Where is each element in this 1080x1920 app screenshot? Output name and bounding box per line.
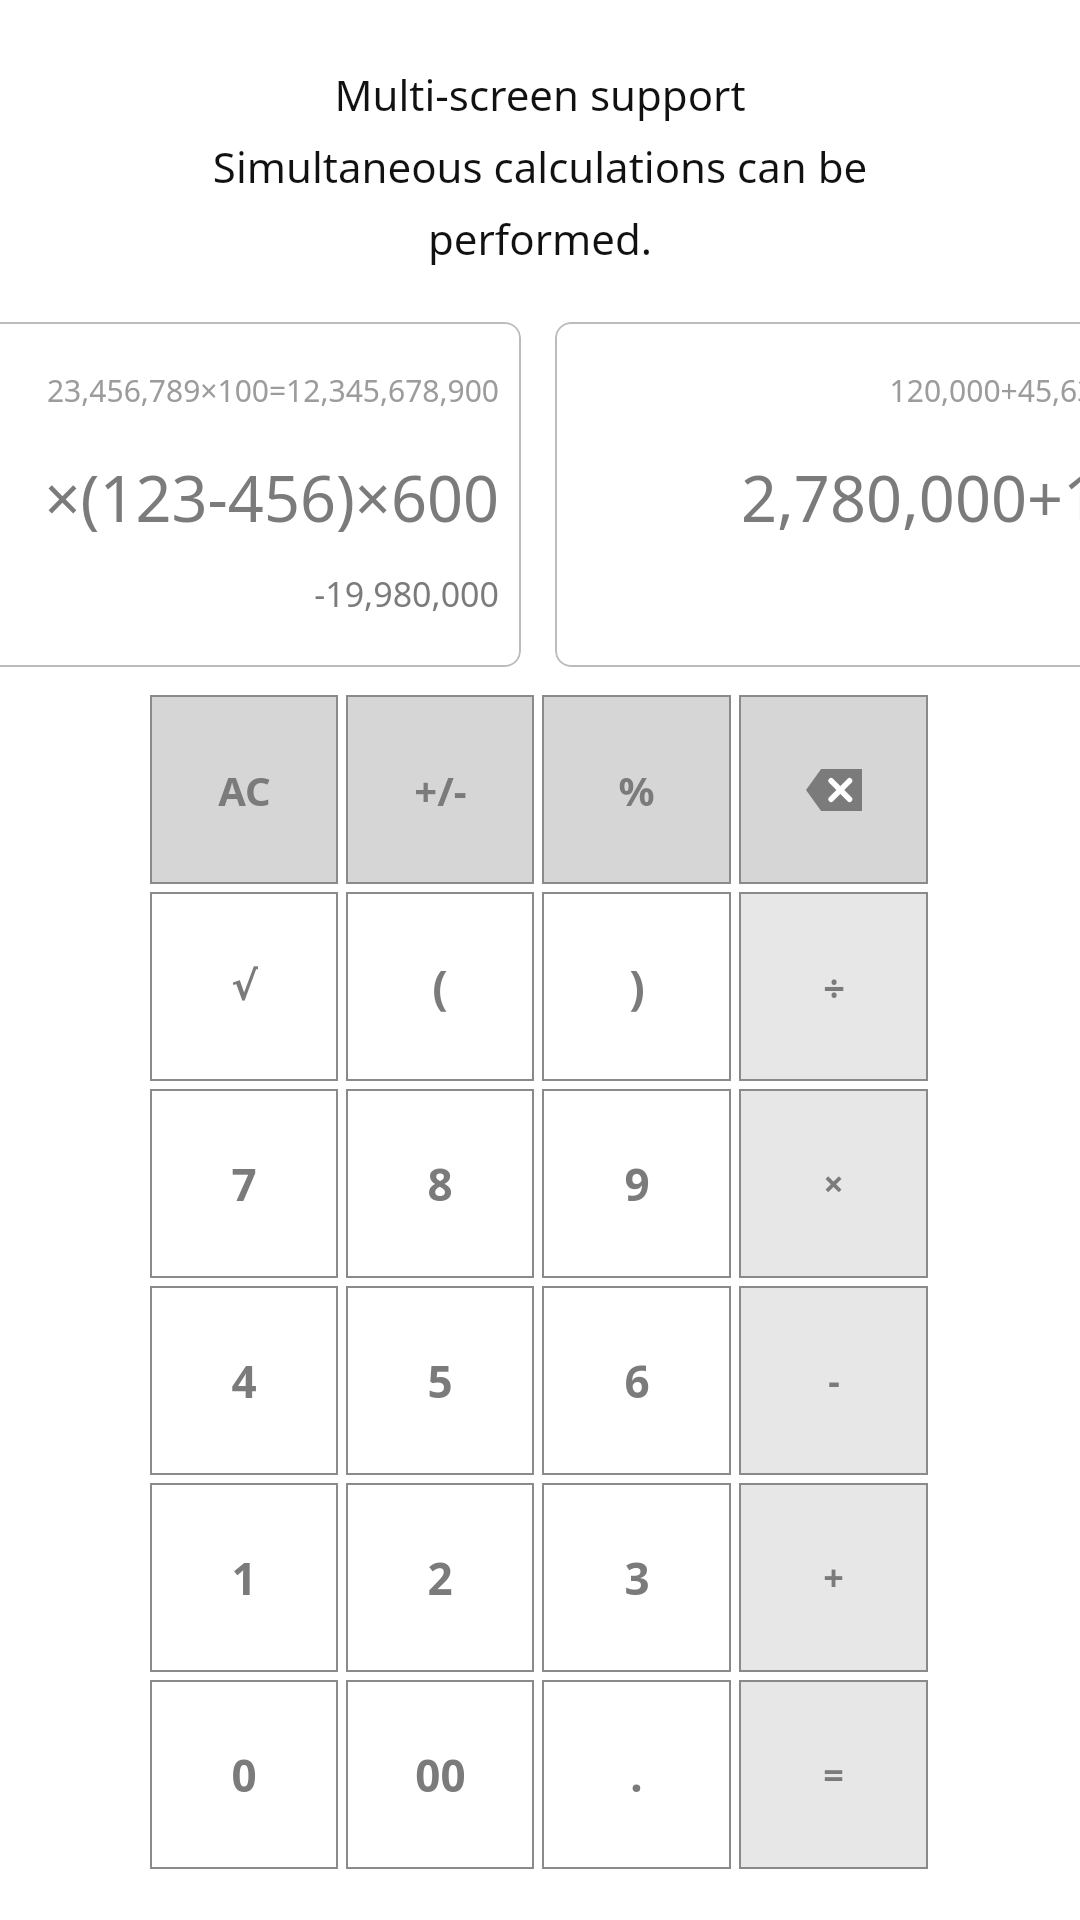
button[interactable]: 00	[346, 1680, 534, 1869]
staticText: 00	[415, 1745, 466, 1805]
button[interactable]: 5	[346, 1286, 534, 1475]
button[interactable]: √	[150, 892, 338, 1081]
button[interactable]: 8	[346, 1089, 534, 1278]
staticText: =	[823, 1750, 844, 1799]
button[interactable]: %	[542, 695, 731, 884]
staticText: +/-	[414, 763, 467, 817]
button[interactable]: +/-	[346, 695, 534, 884]
button[interactable]: Backspace	[739, 695, 928, 884]
staticText: (	[432, 955, 448, 1018]
button[interactable]: -	[739, 1286, 928, 1475]
staticText: .	[630, 1745, 643, 1805]
staticText: 5	[427, 1351, 453, 1411]
staticText: -	[828, 1356, 840, 1405]
staticText: %	[618, 763, 655, 817]
staticText: ÷	[823, 961, 845, 1013]
button[interactable]: 2	[346, 1483, 534, 1672]
button[interactable]: ×	[739, 1089, 928, 1278]
staticText: )	[629, 955, 645, 1018]
staticText: -19,980,000	[314, 571, 499, 617]
staticText: 23,456,789×100=12,345,678,900	[46, 370, 499, 411]
button[interactable]: )	[542, 892, 731, 1081]
staticText: Multi-screen support Simultaneous calcul…	[40, 66, 1040, 267]
button[interactable]: .	[542, 1680, 731, 1869]
staticText: 120,000+45,632×10%	[889, 370, 1080, 411]
button[interactable]: =	[739, 1680, 928, 1869]
button[interactable]: 1	[150, 1483, 338, 1672]
staticText: ×	[823, 1159, 844, 1208]
staticText: 2,780,000+1,56	[740, 455, 1080, 541]
staticText: AC	[218, 763, 271, 817]
staticText: 6	[624, 1351, 650, 1411]
button[interactable]: AC	[150, 695, 338, 884]
button[interactable]: +	[739, 1483, 928, 1672]
button[interactable]: 23,456,789×100=12,345,678,900	[0, 322, 521, 667]
button[interactable]: 6	[542, 1286, 731, 1475]
button[interactable]: 4	[150, 1286, 338, 1475]
staticText: 0	[231, 1745, 257, 1805]
staticText: ×(123-456)×600	[44, 455, 499, 541]
staticText: 2	[427, 1548, 453, 1608]
button[interactable]: (	[346, 892, 534, 1081]
button[interactable]: 9	[542, 1089, 731, 1278]
button[interactable]: 7	[150, 1089, 338, 1278]
staticText: 7	[231, 1154, 257, 1214]
staticText: 8	[427, 1154, 453, 1214]
staticText: 1	[231, 1548, 257, 1608]
staticText: 3	[624, 1548, 650, 1608]
staticText: √	[231, 963, 258, 1010]
button[interactable]: 3	[542, 1483, 731, 1672]
button[interactable]: 0	[150, 1680, 338, 1869]
button[interactable]: ÷	[739, 892, 928, 1081]
button[interactable]: 120,000+45,632×10%	[555, 322, 1080, 667]
staticText: +	[823, 1553, 844, 1602]
staticText: 4	[231, 1351, 257, 1411]
staticText: 9	[624, 1154, 650, 1214]
